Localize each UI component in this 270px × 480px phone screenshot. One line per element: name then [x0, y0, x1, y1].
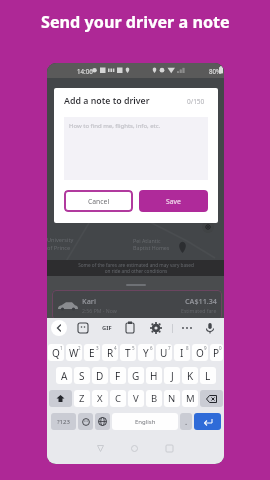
button[interactable]: Clipboard	[122, 320, 138, 336]
staticText: Save	[166, 197, 181, 206]
staticText: M	[186, 392, 195, 405]
button[interactable]: Back	[94, 442, 107, 455]
staticText: CA$11.34	[185, 296, 217, 306]
staticText: G	[132, 369, 140, 383]
staticText: 6	[150, 345, 153, 351]
staticText: How to find me, flights, info, etc.	[69, 122, 161, 130]
staticText: B	[151, 392, 158, 405]
button[interactable]: More	[179, 320, 195, 336]
button[interactable]: H	[146, 367, 162, 384]
staticText: Q	[52, 346, 60, 360]
staticText: Send your driver a note	[41, 11, 230, 33]
staticText: S	[79, 369, 85, 383]
staticText: Cancel	[88, 197, 110, 206]
staticText: 1	[60, 345, 63, 351]
staticText: 0/150	[187, 97, 205, 106]
button[interactable]: Settings	[148, 320, 164, 336]
button[interactable]: X	[92, 390, 108, 407]
staticText: Add a note to driver	[64, 95, 150, 107]
button[interactable]: W	[66, 344, 82, 361]
button[interactable]: Z	[74, 390, 90, 407]
staticText: K	[187, 369, 194, 383]
button[interactable]: Emoji	[78, 413, 93, 430]
button[interactable]: Q	[48, 344, 64, 361]
button[interactable]: ?123	[51, 413, 76, 430]
button[interactable]: Home	[128, 442, 141, 455]
staticText: Some of the fares are estimated and may …	[78, 262, 194, 274]
staticText: P	[213, 346, 220, 360]
staticText: L	[205, 369, 211, 383]
staticText: .	[185, 416, 188, 427]
button[interactable]: My location	[202, 221, 214, 233]
button[interactable]: D	[92, 367, 108, 384]
button[interactable]: U	[156, 344, 172, 361]
button[interactable]: English	[112, 413, 178, 430]
staticText: 3	[96, 345, 99, 351]
button[interactable]: N	[164, 390, 180, 407]
button[interactable]: Y	[138, 344, 154, 361]
staticText: V	[133, 392, 139, 405]
button[interactable]: Back	[51, 320, 67, 336]
staticText: 4	[114, 345, 117, 351]
staticText: A	[61, 369, 68, 383]
button[interactable]: GIF	[99, 320, 115, 336]
staticText: Y	[143, 346, 149, 360]
staticText: 14:06	[77, 67, 93, 75]
button[interactable]: C	[110, 390, 126, 407]
staticText: University of Prince	[47, 236, 74, 252]
button[interactable]: Enter	[194, 413, 221, 430]
staticText: Estimated fare	[181, 307, 217, 314]
button[interactable]: M	[182, 390, 198, 407]
button[interactable]: R	[102, 344, 118, 361]
staticText: U	[160, 346, 168, 360]
button[interactable]: L	[200, 367, 216, 384]
staticText: O	[196, 346, 204, 360]
button[interactable]: S	[74, 367, 90, 384]
staticText: English	[135, 418, 156, 426]
button[interactable]: A	[56, 367, 72, 384]
button[interactable]: Stickers	[75, 320, 91, 336]
staticText: E	[89, 346, 95, 360]
button[interactable]: Kari	[52, 290, 222, 320]
button[interactable]: O	[192, 344, 208, 361]
staticText: 2	[78, 345, 81, 351]
staticText: J	[171, 369, 174, 383]
button[interactable]: P	[210, 344, 223, 361]
staticText: 9	[204, 345, 207, 351]
staticText: Z	[79, 392, 85, 405]
button[interactable]: I	[174, 344, 190, 361]
staticText: 5	[132, 345, 135, 351]
button[interactable]: B	[146, 390, 162, 407]
button[interactable]: E	[84, 344, 100, 361]
staticText: 7	[168, 345, 171, 351]
staticText: 2:56 PM - Now	[82, 307, 117, 314]
button[interactable]: K	[182, 367, 198, 384]
button[interactable]: Cancel	[64, 190, 133, 212]
button[interactable]: Change language	[95, 413, 110, 430]
staticText: W	[69, 346, 79, 360]
staticText: F	[115, 369, 121, 383]
button[interactable]: Save	[139, 190, 208, 212]
staticText: D	[96, 369, 104, 383]
button[interactable]: F	[110, 367, 126, 384]
button[interactable]: Shift	[49, 390, 72, 407]
staticText: ?123	[57, 418, 70, 426]
button[interactable]: J	[164, 367, 180, 384]
staticText: GIF	[102, 324, 112, 332]
staticText: Kari	[82, 296, 97, 306]
staticText: N	[168, 392, 176, 405]
staticText: 0	[219, 345, 222, 351]
staticText: X	[97, 392, 103, 405]
button[interactable]: G	[128, 367, 144, 384]
button[interactable]: Recent apps	[163, 442, 176, 455]
button[interactable]: Backspace	[200, 390, 223, 407]
button[interactable]: T	[120, 344, 136, 361]
button[interactable]: .	[180, 413, 192, 430]
staticText: 8	[186, 345, 189, 351]
staticText: I	[180, 346, 184, 360]
staticText: C	[115, 392, 122, 405]
button[interactable]: Voice input	[202, 320, 218, 336]
staticText: T	[125, 346, 131, 360]
button[interactable]: V	[128, 390, 144, 407]
staticText: H	[150, 369, 158, 383]
